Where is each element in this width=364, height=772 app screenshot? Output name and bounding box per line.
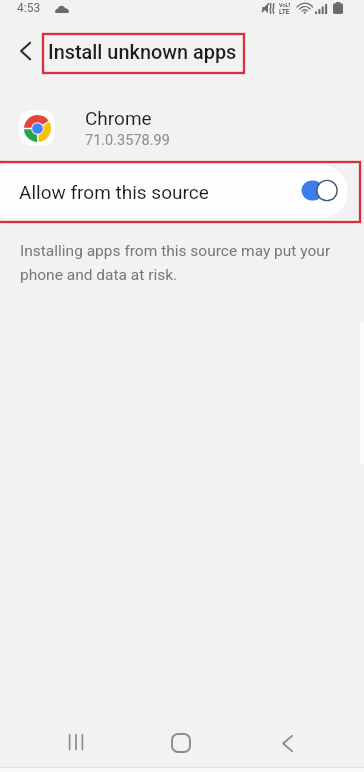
staticText: Installing apps from this source may put… [20,242,331,284]
button[interactable]: Chrome [0,95,364,161]
staticText: 4:53 [17,1,41,15]
button[interactable]: Back [263,720,311,766]
staticText: LTE [279,8,290,16]
button[interactable]: Navigate up [8,33,42,69]
staticText: Install unknown apps [48,41,237,64]
button[interactable]: Allow from this source [0,165,348,218]
button[interactable]: Recent apps [52,719,100,765]
staticText: Allow from this source [19,181,209,203]
button[interactable]: Home [157,720,205,766]
staticText: Chrome [85,107,152,129]
button[interactable]: Install unknown apps [43,34,244,73]
staticText: VoLTE [279,2,290,8]
staticText: 71.0.3578.99 [85,132,170,149]
